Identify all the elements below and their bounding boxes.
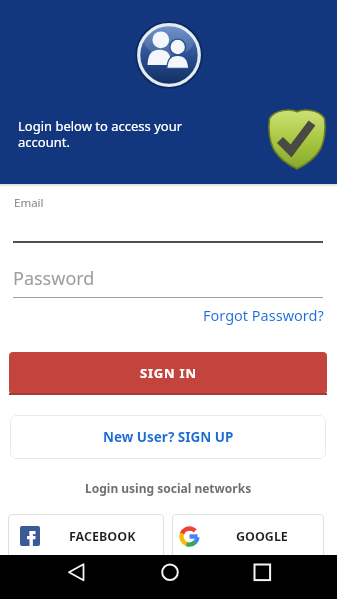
button[interactable]: FACEBOOK	[8, 514, 164, 558]
staticText: New User? SIGN UP	[103, 428, 234, 446]
button[interactable]: Forgot Password?	[203, 305, 324, 325]
staticText: Password	[13, 266, 95, 291]
button[interactable]: GOOGLE	[172, 514, 324, 558]
staticText: FACEBOOK	[69, 528, 136, 545]
staticText: GOOGLE	[236, 528, 288, 545]
staticText: Login below to access your account.	[18, 117, 183, 151]
staticText: Login using social networks	[85, 480, 252, 496]
staticText: SIGN IN	[140, 364, 197, 382]
button[interactable]: New User? SIGN UP	[10, 415, 326, 459]
staticText: Email	[14, 195, 44, 211]
button[interactable]: SIGN IN	[9, 352, 327, 394]
